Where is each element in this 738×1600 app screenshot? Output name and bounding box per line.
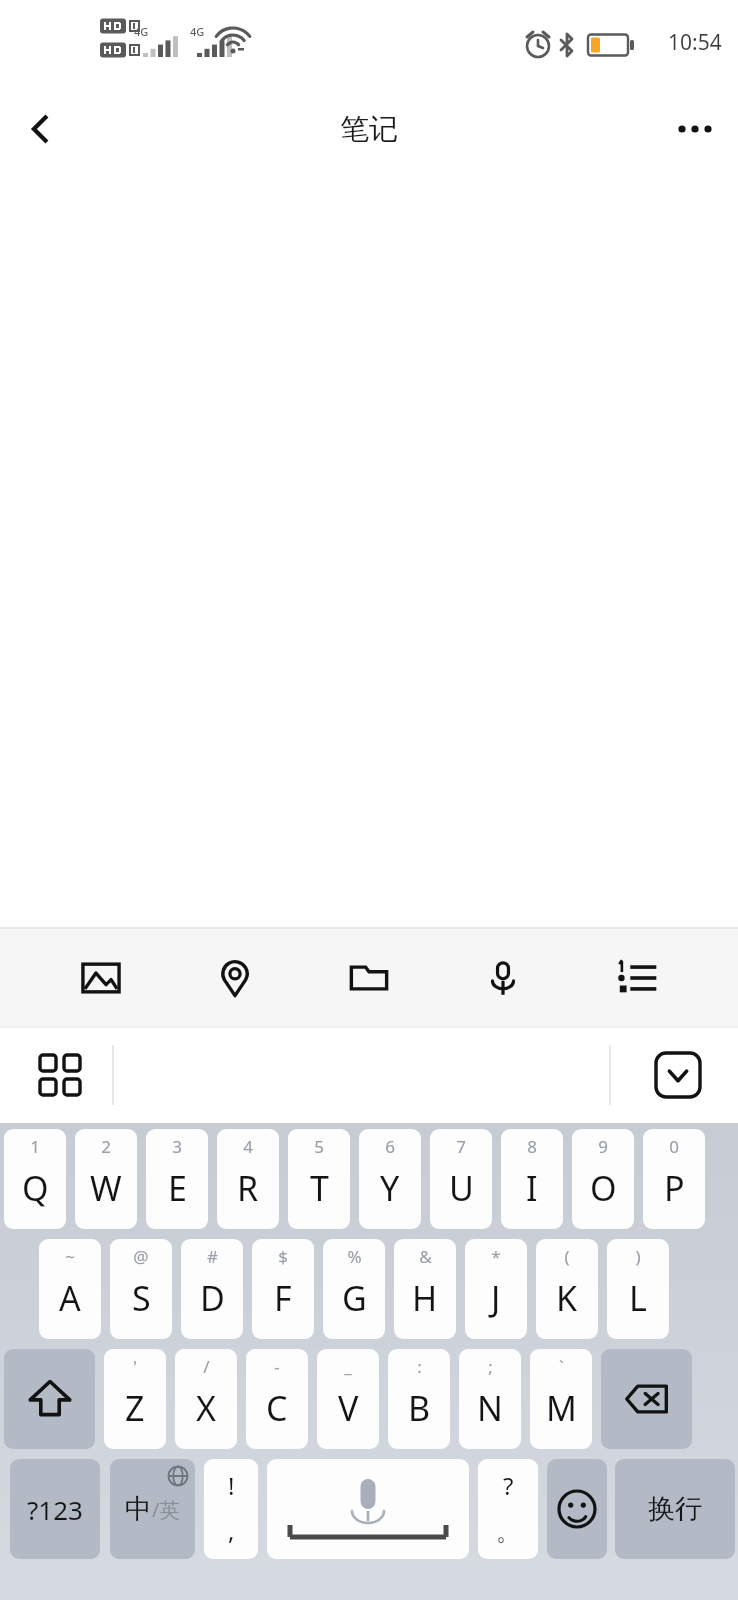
staticText: S xyxy=(132,1275,151,1321)
button[interactable]: Space xyxy=(267,1459,469,1559)
button[interactable]: Emoji xyxy=(547,1459,607,1559)
staticText: X xyxy=(196,1385,216,1431)
button[interactable]: Insert image xyxy=(70,947,132,1009)
staticText: 4G xyxy=(134,24,149,39)
button[interactable]: Back xyxy=(12,101,68,157)
staticText: 4G xyxy=(190,24,205,39)
staticText: $ xyxy=(278,1245,288,1268)
staticText: 8 xyxy=(527,1135,537,1158)
button[interactable]: Add location xyxy=(204,947,266,1009)
button[interactable]: ' xyxy=(104,1349,166,1449)
staticText: : xyxy=(417,1355,422,1378)
button[interactable]: # xyxy=(181,1239,243,1339)
button[interactable]: ) xyxy=(607,1239,669,1339)
button[interactable]: List format xyxy=(606,947,668,1009)
staticText: I xyxy=(526,1165,538,1211)
button[interactable]: Shift xyxy=(4,1349,95,1449)
button[interactable]: ? xyxy=(478,1459,538,1559)
staticText: U xyxy=(449,1165,474,1211)
staticText: @ xyxy=(133,1245,149,1268)
button[interactable]: 3 xyxy=(146,1129,208,1229)
button[interactable]: More options xyxy=(666,100,724,158)
button[interactable]: 6 xyxy=(359,1129,421,1229)
staticText: 7 xyxy=(456,1135,466,1158)
staticText: 10:54 xyxy=(668,28,722,57)
button[interactable]: Voice input xyxy=(472,947,534,1009)
button[interactable]: ` xyxy=(530,1349,592,1449)
staticText: C xyxy=(266,1385,288,1431)
staticText: / xyxy=(203,1355,210,1378)
button[interactable]: ! xyxy=(204,1459,258,1559)
staticText: P xyxy=(664,1165,685,1211)
staticText: 2 xyxy=(101,1135,111,1158)
staticText: A xyxy=(59,1275,81,1321)
staticText: J xyxy=(491,1275,501,1321)
button[interactable]: 中 xyxy=(110,1459,195,1559)
staticText: B xyxy=(408,1385,431,1431)
staticText: O xyxy=(590,1165,617,1211)
staticText: Y xyxy=(380,1165,400,1211)
button[interactable]: 1 xyxy=(4,1129,66,1229)
staticText: ! xyxy=(228,1469,235,1502)
staticText: 9 xyxy=(598,1135,608,1158)
staticText: 。 xyxy=(496,1517,520,1547)
staticText: , xyxy=(228,1514,235,1547)
staticText: ? xyxy=(503,1469,514,1502)
button[interactable]: Keyboard panel xyxy=(28,1043,92,1107)
button[interactable]: $ xyxy=(252,1239,314,1339)
staticText: 1 xyxy=(30,1135,40,1158)
button[interactable]: ( xyxy=(536,1239,598,1339)
staticText: M xyxy=(546,1385,577,1431)
button[interactable]: - xyxy=(246,1349,308,1449)
staticText: ` xyxy=(559,1355,564,1378)
staticText: Z xyxy=(125,1385,145,1431)
staticText: 3 xyxy=(172,1135,182,1158)
staticText: ) xyxy=(635,1245,641,1268)
button[interactable]: Attach file xyxy=(338,947,400,1009)
staticText: * xyxy=(491,1245,501,1268)
staticText: - xyxy=(274,1355,280,1378)
staticText: D xyxy=(200,1275,225,1321)
button[interactable]: 0 xyxy=(643,1129,705,1229)
button[interactable]: 5 xyxy=(288,1129,350,1229)
button[interactable]: 4 xyxy=(217,1129,279,1229)
staticText: T xyxy=(310,1165,329,1211)
button[interactable]: 9 xyxy=(572,1129,634,1229)
staticText: L xyxy=(629,1275,647,1321)
staticText: W xyxy=(90,1165,122,1211)
staticText: K xyxy=(556,1275,578,1321)
staticText: 笔记 xyxy=(340,111,398,148)
staticText: H xyxy=(412,1275,438,1321)
button[interactable]: Hide keyboard xyxy=(646,1043,710,1107)
button[interactable]: 2 xyxy=(75,1129,137,1229)
staticText: /英 xyxy=(152,1496,180,1523)
button[interactable]: @ xyxy=(110,1239,172,1339)
button[interactable]: % xyxy=(323,1239,385,1339)
staticText: ( xyxy=(564,1245,570,1268)
button[interactable]: Backspace xyxy=(601,1349,692,1449)
staticText: 换行 xyxy=(648,1492,702,1526)
button[interactable]: 7 xyxy=(430,1129,492,1229)
button[interactable]: ~ xyxy=(39,1239,101,1339)
staticText: _ xyxy=(344,1355,352,1378)
staticText: F xyxy=(274,1275,292,1321)
button[interactable]: / xyxy=(175,1349,237,1449)
button[interactable]: & xyxy=(394,1239,456,1339)
staticText: Q xyxy=(22,1165,49,1211)
button[interactable]: 8 xyxy=(501,1129,563,1229)
button[interactable]: * xyxy=(465,1239,527,1339)
button[interactable]: 换行 xyxy=(615,1459,735,1559)
staticText: N xyxy=(477,1385,503,1431)
staticText: # xyxy=(207,1245,218,1268)
staticText: ~ xyxy=(65,1245,75,1268)
staticText: V xyxy=(338,1385,359,1431)
button[interactable]: ?123 xyxy=(10,1459,100,1559)
button[interactable]: ; xyxy=(459,1349,521,1449)
staticText: G xyxy=(342,1275,367,1321)
button[interactable]: _ xyxy=(317,1349,379,1449)
button[interactable]: : xyxy=(388,1349,450,1449)
staticText: 中 xyxy=(125,1492,152,1526)
staticText: E xyxy=(168,1165,187,1211)
staticText: 6 xyxy=(385,1135,395,1158)
